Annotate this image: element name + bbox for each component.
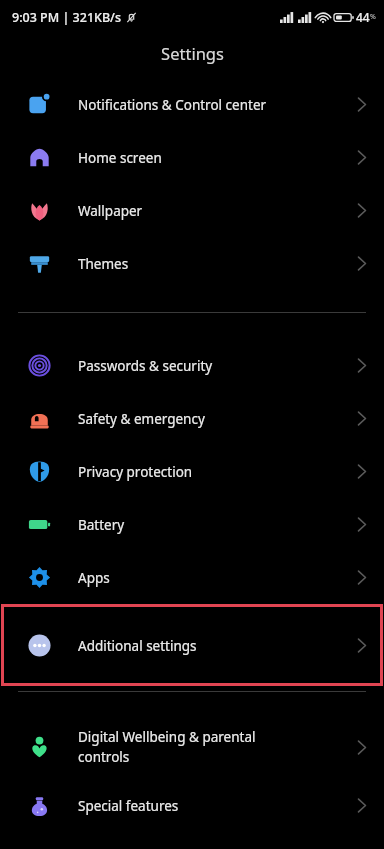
staticText: 44 [356,9,370,25]
button[interactable]: Privacy protection [0,445,384,498]
button[interactable]: Passwords & security [0,339,384,392]
staticText: Themes [78,255,340,273]
other: Open [357,202,367,219]
staticText: Wallpaper [78,202,340,220]
button[interactable]: Digital Wellbeing & parental [0,715,384,779]
other: Open [357,463,367,480]
staticText: Apps [78,569,340,587]
staticText: Safety & emergency [78,410,340,428]
other: Open [357,569,367,586]
staticText: Privacy protection [78,463,340,481]
staticText: Passwords & security [78,357,340,375]
staticText: Notifications & Control center [78,96,340,114]
other: Open [357,255,367,272]
button[interactable]: Wallpaper [0,184,384,237]
button[interactable]: Safety & emergency [0,392,384,445]
other: Open [357,516,367,533]
button[interactable]: Battery [0,498,384,551]
button[interactable]: Additional settings [1,604,383,686]
staticText: Settings [161,42,224,64]
staticText: Home screen [78,149,340,167]
staticText: Battery [78,516,340,534]
button[interactable]: Notifications & Control center [0,78,384,131]
other: Open [357,637,367,654]
other: Open [357,96,367,113]
other: Open [357,149,367,166]
staticText: Digital Wellbeing & parental [78,728,256,746]
other: Open [357,357,367,374]
other: Open [357,739,367,756]
button[interactable]: Apps [0,551,384,604]
button[interactable]: Themes [0,237,384,290]
staticText: 9:03 PM | 321KB/s [12,9,122,26]
staticText: Additional settings [78,637,340,655]
button[interactable]: Special features [0,779,384,832]
staticText: Special features [78,797,340,815]
staticText: controls [78,748,130,766]
staticText: % [370,12,376,22]
other: Open [357,797,367,814]
other: Open [357,410,367,427]
button[interactable]: Home screen [0,131,384,184]
